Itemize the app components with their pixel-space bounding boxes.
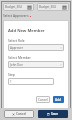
button[interactable]: John Doe	[8, 61, 64, 68]
button[interactable]: Add	[53, 96, 64, 103]
staticText: Approver	[10, 46, 60, 50]
staticText: Show As Story	[42, 113, 64, 117]
button[interactable]: 1	[8, 78, 54, 85]
button[interactable]: Cancel	[4, 110, 34, 118]
staticText: Select Role	[8, 39, 25, 43]
staticText: Cancel	[16, 112, 27, 116]
button[interactable]: Budget_304	[37, 3, 69, 11]
button[interactable]: Approver	[8, 44, 64, 51]
staticText: Budget_304	[5, 5, 27, 9]
staticText: Budget_304	[39, 5, 62, 9]
staticText: Step	[8, 73, 15, 77]
button[interactable]: Save	[38, 110, 68, 118]
button[interactable]: Pick date	[27, 5, 32, 10]
staticText: Add New Member	[8, 28, 45, 34]
button[interactable]: Pick date	[62, 5, 67, 10]
staticText: Select Approvers	[3, 14, 29, 18]
staticText: Cancel	[38, 98, 48, 102]
button[interactable]: Budget_304	[3, 3, 34, 11]
button[interactable]: Show As Story	[41, 112, 65, 118]
button[interactable]: Cancel	[36, 96, 50, 103]
staticText: John Doe	[10, 63, 60, 67]
staticText: 1	[10, 80, 12, 84]
staticText: Save	[51, 112, 59, 116]
staticText: Select Member	[8, 56, 31, 60]
staticText: Add	[55, 98, 62, 102]
